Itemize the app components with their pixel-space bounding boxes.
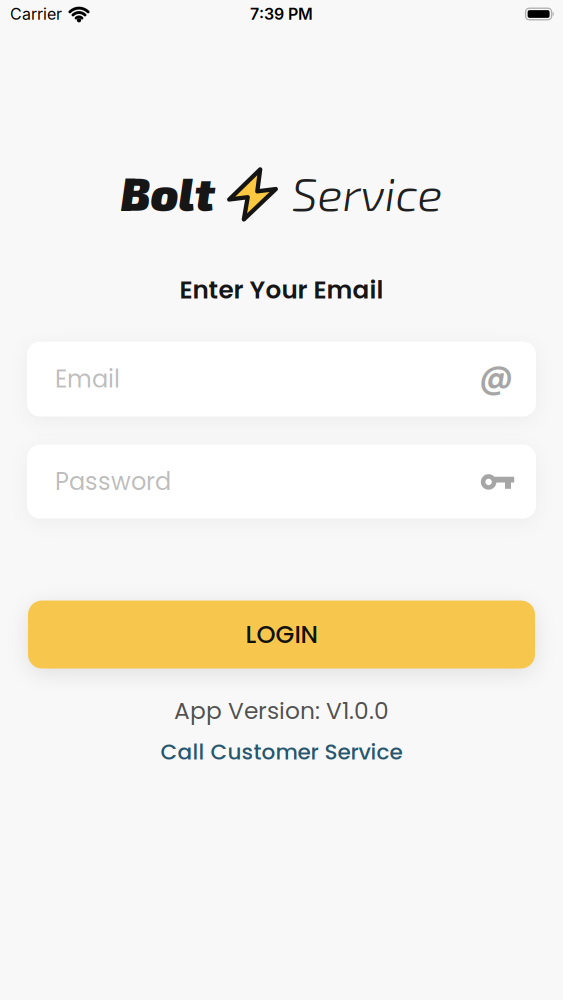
- staticText: 7:39 PM: [250, 4, 313, 24]
- staticText: App Version: V1.0.0: [174, 694, 389, 727]
- staticText: Email: [55, 362, 120, 396]
- staticText: Service: [291, 164, 442, 220]
- staticText: Enter Your Email: [179, 273, 383, 307]
- button[interactable]: Email: [0, 341, 563, 416]
- staticText: Carrier: [10, 4, 62, 24]
- staticText: Password: [55, 465, 171, 498]
- staticText: LOGIN: [245, 617, 317, 651]
- button[interactable]: Call Customer Service: [160, 737, 402, 767]
- staticText: @: [479, 354, 513, 400]
- button[interactable]: Password: [0, 444, 563, 518]
- staticText: Bolt: [120, 165, 214, 220]
- staticText: Call Customer Service: [160, 737, 402, 767]
- button[interactable]: LOGIN: [0, 600, 563, 668]
